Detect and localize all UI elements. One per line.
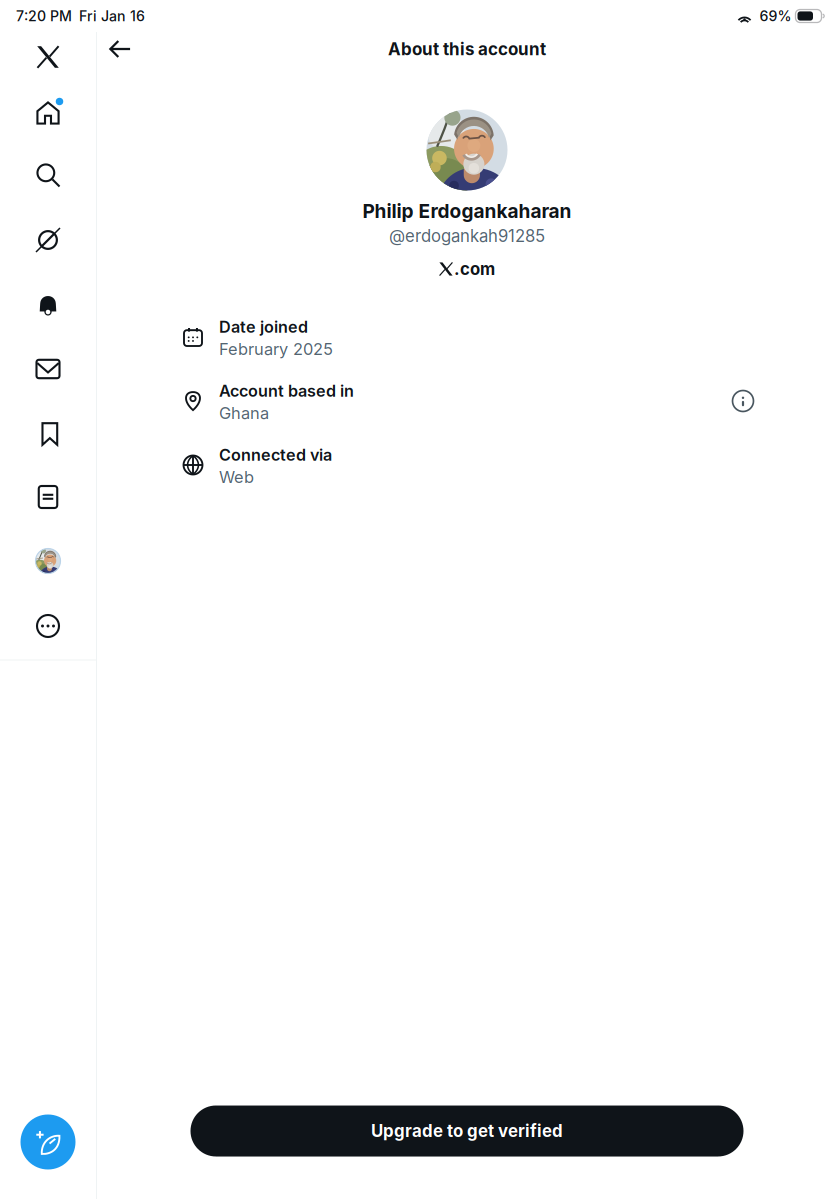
- button[interactable]: Grok: [0, 212, 96, 268]
- staticText: .com: [454, 259, 495, 279]
- button[interactable]: Post: [9, 1103, 87, 1181]
- button[interactable]: Messages: [0, 341, 96, 397]
- button[interactable]: Search: [0, 147, 96, 203]
- button[interactable]: Bookmarks: [0, 406, 96, 462]
- staticText: About this account: [388, 39, 546, 59]
- staticText: Upgrade to get verified: [371, 1121, 563, 1141]
- staticText: Fri Jan 16: [79, 7, 145, 24]
- button[interactable]: Home: [0, 85, 96, 141]
- button[interactable]: More: [0, 598, 96, 654]
- staticText: Ghana: [219, 403, 269, 423]
- staticText: Date joined: [219, 317, 308, 337]
- button[interactable]: Lists: [0, 469, 96, 525]
- staticText: Connected via: [219, 445, 332, 465]
- staticText: 7:20 PM: [16, 7, 72, 24]
- staticText: 69%: [759, 7, 791, 24]
- button[interactable]: X: [0, 29, 96, 85]
- staticText: Web: [219, 467, 254, 487]
- staticText: Philip Erdogankaharan: [362, 199, 571, 223]
- button[interactable]: Back: [98, 27, 142, 71]
- staticText: @erdogankah91285: [389, 226, 545, 246]
- staticText: February 2025: [219, 339, 333, 359]
- staticText: Account based in: [219, 381, 354, 401]
- button[interactable]: More information: [721, 379, 765, 423]
- button[interactable]: Upgrade to get verified: [190, 1105, 743, 1156]
- button[interactable]: Profile: [0, 533, 96, 589]
- button[interactable]: Notifications: [0, 277, 96, 333]
